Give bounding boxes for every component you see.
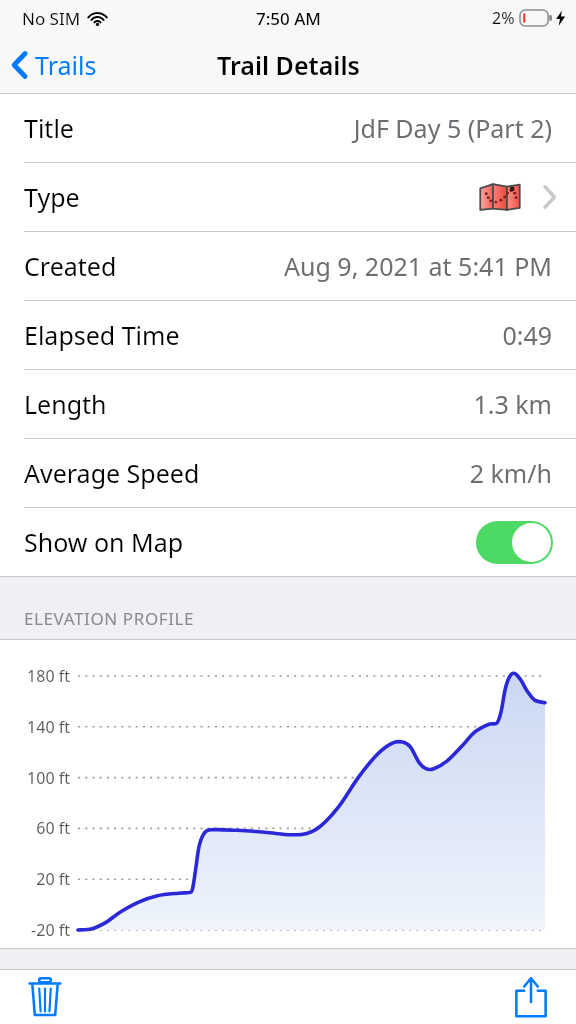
- button[interactable]: Trails: [0, 40, 111, 90]
- staticText: -20 ft: [0, 919, 70, 941]
- staticText: 60 ft: [0, 817, 70, 839]
- staticText: 140 ft: [0, 716, 70, 738]
- staticText: 7:50 AM: [256, 7, 321, 30]
- other: Show on Map toggle, on: [476, 521, 553, 564]
- staticText: 180 ft: [0, 665, 70, 687]
- staticText: 100 ft: [0, 767, 70, 789]
- button[interactable]: Type: [0, 163, 576, 231]
- button[interactable]: Share: [500, 970, 562, 1024]
- staticText: 1.3 km: [473, 387, 552, 421]
- staticText: 20 ft: [0, 868, 70, 890]
- staticText: Trail Details: [217, 48, 360, 82]
- staticText: Average Speed: [24, 456, 200, 490]
- staticText: Created: [24, 249, 117, 283]
- staticText: Length: [24, 387, 107, 421]
- button[interactable]: Length: [0, 370, 576, 438]
- button[interactable]: Elapsed Time: [0, 301, 576, 369]
- staticText: Aug 9, 2021 at 5:41 PM: [284, 249, 552, 283]
- staticText: No SIM: [22, 7, 81, 30]
- staticText: JdF Day 5 (Part 2): [353, 111, 552, 145]
- staticText: 2%: [492, 7, 515, 29]
- button[interactable]: Created: [0, 232, 576, 300]
- button[interactable]: Delete: [14, 970, 76, 1024]
- staticText: Elapsed Time: [24, 318, 180, 352]
- staticText: Title: [24, 111, 74, 145]
- staticText: Trails: [35, 48, 97, 82]
- staticText: Show on Map: [24, 525, 184, 559]
- button[interactable]: Title: [0, 94, 576, 162]
- other: Choose type: [543, 185, 556, 209]
- button[interactable]: Show on Map: [0, 508, 576, 576]
- button[interactable]: Average Speed: [0, 439, 576, 507]
- staticText: ELEVATION PROFILE: [24, 607, 195, 630]
- staticText: Type: [24, 180, 80, 214]
- staticText: 0:49: [502, 318, 552, 352]
- staticText: 2 km/h: [469, 456, 552, 490]
